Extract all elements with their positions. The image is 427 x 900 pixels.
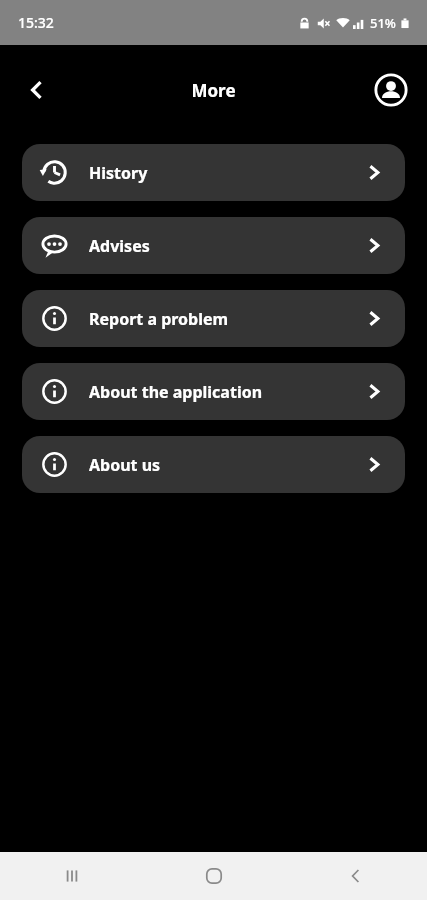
button[interactable]: About the application [22, 363, 405, 420]
staticText: Advises [89, 235, 150, 257]
staticText: History [89, 162, 148, 184]
button[interactable]: Profile [370, 69, 412, 111]
button[interactable]: Back [285, 852, 427, 900]
staticText: About the application [89, 381, 263, 403]
button[interactable]: About us [22, 436, 405, 493]
button[interactable]: Report a problem [22, 290, 405, 347]
button[interactable]: History [22, 144, 405, 201]
button[interactable]: Recent apps [0, 852, 143, 900]
staticText: 51% [370, 14, 396, 32]
staticText: 15:32 [18, 13, 54, 32]
button[interactable]: Advises [22, 217, 405, 274]
button[interactable]: Back [14, 67, 60, 113]
staticText: About us [89, 454, 161, 476]
staticText: More [191, 79, 236, 102]
button[interactable]: Home [143, 852, 285, 900]
staticText: Report a problem [89, 308, 229, 330]
